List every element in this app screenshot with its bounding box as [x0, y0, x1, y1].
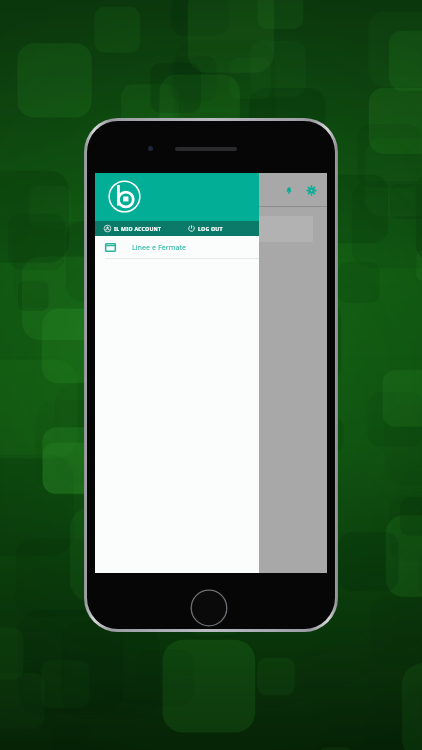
button[interactable]: Settings — [305, 184, 317, 196]
staticText: IL MIO ACCOUNT — [114, 225, 162, 232]
staticText: LOG OUT — [198, 225, 223, 232]
button[interactable]: LOG OUT — [184, 225, 259, 232]
button[interactable]: Notifications — [283, 184, 295, 196]
button[interactable]: Linee e Fermate — [95, 236, 259, 258]
button[interactable]: IL MIO ACCOUNT — [95, 225, 184, 232]
staticText: Linee e Fermate — [132, 242, 187, 252]
